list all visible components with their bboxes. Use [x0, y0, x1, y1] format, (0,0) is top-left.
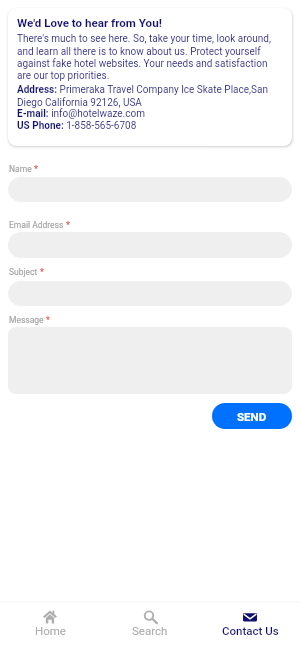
staticText: Name: [9, 164, 32, 174]
button[interactable]: Home: [0, 603, 100, 637]
staticText: *: [44, 315, 50, 325]
staticText: E-mail: info@hotelwaze.com: [17, 108, 145, 120]
staticText: Message: [9, 315, 44, 325]
staticText: Contact Us: [222, 624, 279, 637]
button[interactable]: SEND: [212, 403, 292, 429]
staticText: Email Address: [9, 220, 64, 230]
staticText: *: [38, 267, 44, 277]
staticText: *: [32, 164, 38, 174]
staticText: Search: [132, 624, 168, 637]
staticText: *: [64, 220, 70, 230]
staticText: SEND: [237, 410, 267, 423]
staticText: There's much to see here. So, take your …: [17, 33, 283, 81]
staticText: Subject: [9, 267, 38, 277]
staticText: Address: Primeraka Travel Company Ice Sk…: [17, 84, 283, 108]
other: Home: [43, 610, 57, 624]
other: Search: [143, 610, 157, 624]
staticText: US Phone: 1-858-565-6708: [17, 120, 137, 132]
other: Contact Us: [243, 610, 257, 624]
staticText: Home: [35, 624, 66, 637]
staticText: We'd Love to hear from You!: [17, 16, 162, 30]
button[interactable]: Contact Us: [200, 603, 300, 637]
button[interactable]: Search: [100, 603, 200, 637]
